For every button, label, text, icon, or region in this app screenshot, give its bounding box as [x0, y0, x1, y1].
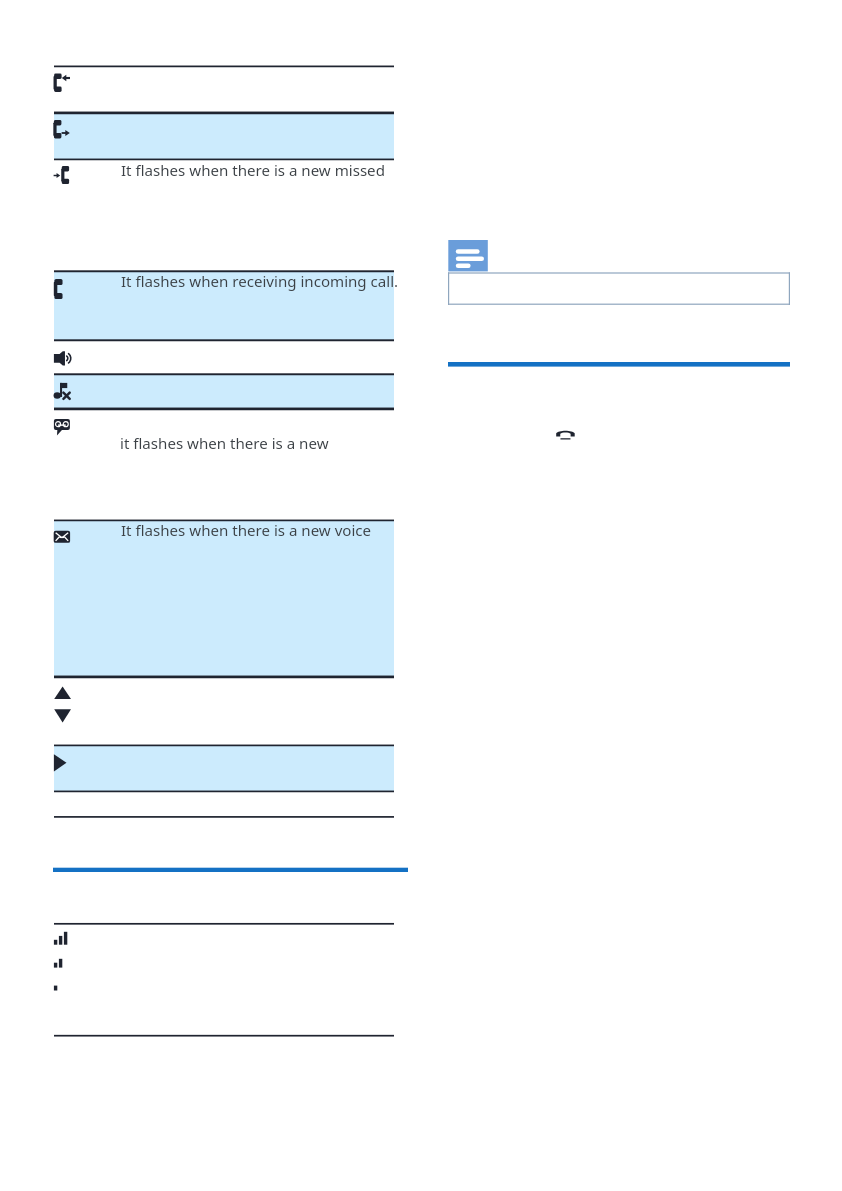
button[interactable]: Play indicator — [54, 745, 394, 791]
button[interactable]: Call forwarding indicator — [54, 113, 394, 160]
staticText: It flashes when there is a new voice — [121, 520, 372, 541]
button[interactable]: Incoming call indicator — [54, 271, 394, 340]
staticText: It flashes when there is a new missed — [121, 160, 385, 181]
button[interactable]: New voicemail indicator — [54, 409, 394, 521]
button[interactable]: New voice message indicator — [54, 520, 394, 676]
button[interactable]: New missed call indicator — [54, 159, 394, 271]
staticText: it flashes when there is a new — [120, 433, 329, 454]
staticText: It flashes when receiving incoming call. — [121, 271, 399, 292]
button[interactable]: Speaker on indicator — [54, 340, 394, 374]
button[interactable]: Outgoing call indicator — [54, 66, 394, 112]
button[interactable]: Signal strength indicators — [54, 920, 394, 1030]
button[interactable]: Music muted indicator — [54, 374, 394, 408]
button[interactable]: Note — [448, 240, 790, 305]
button[interactable]: Scroll up and down indicator — [54, 677, 394, 746]
button[interactable]: End call — [550, 424, 582, 448]
